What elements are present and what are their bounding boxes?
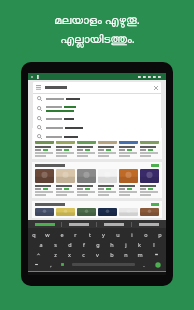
button[interactable]: , [45,260,56,269]
staticText: f [83,241,85,248]
button[interactable]: r [69,230,82,239]
button[interactable] [119,208,138,216]
button[interactable] [98,169,117,196]
button[interactable]: Language [57,260,68,269]
button[interactable]: w [41,230,54,239]
staticText: b [110,251,114,258]
button[interactable]: u [111,230,124,239]
button[interactable]: o [139,230,152,239]
button[interactable] [140,208,159,216]
button[interactable]: y [97,230,110,239]
other: Clear [154,86,158,90]
staticText: c [82,251,85,258]
button[interactable] [33,123,161,132]
staticText: x [68,251,71,258]
staticText: എല്ലായിടത്തും. [60,31,135,47]
button[interactable] [119,130,138,157]
staticText: d [68,241,72,248]
button[interactable]: Menu [33,82,161,93]
button[interactable]: j [119,240,132,249]
staticText: s [54,241,57,248]
button[interactable]: Emoji [150,260,166,269]
button[interactable] [33,94,161,103]
button[interactable] [140,169,159,196]
staticText: a [39,241,43,248]
staticText: v [96,251,99,258]
button[interactable] [35,164,159,167]
button[interactable] [98,130,117,157]
button[interactable]: Symbols [28,260,44,269]
button[interactable]: Backspace [147,250,166,259]
button[interactable]: x [63,250,76,259]
staticText: മലയാളം എഴുതൂ. [54,12,140,28]
button[interactable]: i [125,230,138,239]
staticText: o [144,231,148,238]
button[interactable] [119,169,138,196]
button[interactable]: b [105,250,118,259]
button[interactable] [35,130,54,157]
staticText: z [54,251,57,258]
button[interactable] [28,220,61,228]
button[interactable]: . [138,260,149,269]
button[interactable] [77,208,96,216]
button[interactable] [97,220,131,228]
button[interactable] [33,114,161,123]
other: Menu [36,85,41,90]
staticText: m [137,251,143,258]
staticText: j [125,241,127,248]
button[interactable]: c [77,250,90,259]
button[interactable] [140,130,159,157]
button[interactable]: a [34,240,48,249]
button[interactable]: p [153,230,166,239]
button[interactable]: q [28,230,40,239]
staticText: h [110,241,114,248]
button[interactable] [77,130,96,157]
button[interactable]: d [63,240,76,249]
staticText: r [74,231,77,238]
staticText: l [153,241,155,248]
staticText: k [138,241,141,248]
button[interactable] [132,220,166,228]
staticText: y [102,231,105,238]
button[interactable] [33,132,161,141]
staticText: q [32,231,36,238]
button[interactable]: m [133,250,146,259]
staticText: u [116,231,120,238]
button[interactable] [35,203,159,206]
button[interactable]: e [55,230,68,239]
staticText: n [124,251,128,258]
button[interactable] [35,208,54,216]
button[interactable] [98,208,117,216]
staticText: t [89,231,91,238]
button[interactable]: f [77,240,90,249]
button[interactable] [56,169,75,196]
button[interactable]: l [147,240,160,249]
button[interactable] [56,130,75,157]
button[interactable] [33,103,161,114]
button[interactable] [62,220,96,228]
button[interactable] [77,169,96,196]
button[interactable]: v [91,250,104,259]
button[interactable]: Shift [28,250,48,259]
button[interactable]: k [133,240,146,249]
staticText: w [45,231,50,238]
button[interactable]: g [91,240,104,249]
button[interactable] [35,169,54,196]
button[interactable]: s [49,240,62,249]
button[interactable]: t [83,230,96,239]
staticText: p [158,231,162,238]
button[interactable]: n [119,250,132,259]
staticText: g [96,241,100,248]
staticText: e [60,231,64,238]
button[interactable]: h [105,240,118,249]
button[interactable]: z [49,250,62,259]
button[interactable] [56,208,75,216]
staticText: . [143,261,145,268]
staticText: , [50,261,52,268]
staticText: i [131,231,133,238]
button[interactable]: Space [69,260,137,269]
